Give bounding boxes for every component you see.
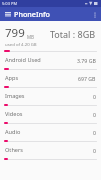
button[interactable]: Apps — [0, 70, 101, 88]
button[interactable]: Open navigation menu — [3, 10, 12, 19]
staticText: PhoneInfo — [14, 9, 50, 19]
staticText: 3.79 GB — [77, 57, 96, 64]
staticText: 0 — [93, 129, 96, 136]
button[interactable]: Videos — [0, 106, 101, 124]
staticText: Images — [5, 92, 25, 100]
staticText: MB — [27, 34, 35, 40]
staticText: used of 4.20 GB — [5, 41, 37, 47]
staticText: Apps — [5, 74, 19, 82]
staticText: 697 GB — [78, 75, 96, 82]
button[interactable]: Audio — [0, 124, 101, 142]
staticText: Audio — [5, 128, 21, 136]
staticText: Videos — [5, 110, 23, 118]
staticText: 0 — [93, 93, 96, 100]
button[interactable]: More options — [90, 10, 99, 19]
staticText: 799 — [5, 25, 25, 41]
staticText: Others — [5, 146, 23, 154]
staticText: 0 — [93, 147, 96, 154]
button[interactable]: Images — [0, 88, 101, 106]
staticText: 5:03 PM — [2, 1, 18, 6]
staticText: 0 — [93, 111, 96, 118]
button[interactable]: Others — [0, 142, 101, 160]
staticText: Android Used — [5, 56, 41, 64]
staticText: Total : 8GB — [50, 28, 96, 40]
button[interactable]: Android Used — [0, 52, 101, 70]
